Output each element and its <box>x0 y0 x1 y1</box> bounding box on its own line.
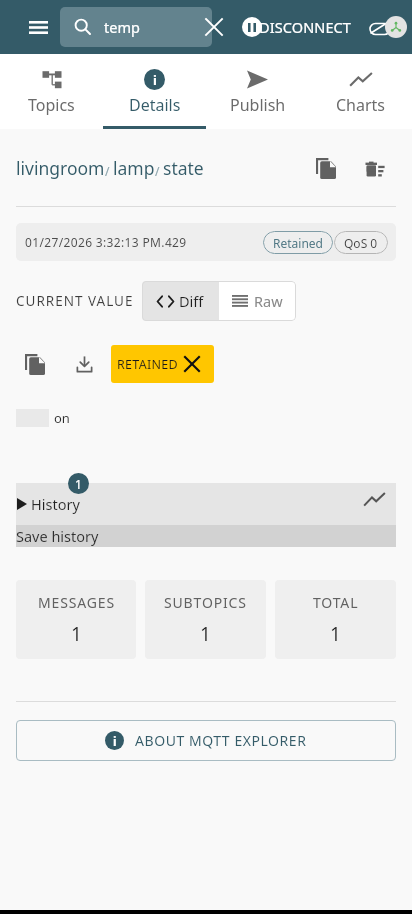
staticText: DISCONNECT <box>259 17 351 37</box>
staticText: RETAINED <box>117 356 179 373</box>
button[interactable]: Connection status <box>360 0 412 54</box>
button[interactable]: Download value <box>65 345 103 383</box>
button[interactable]: Copy topic <box>307 149 345 187</box>
staticText: 1 <box>71 621 82 647</box>
button[interactable]: Topics <box>0 54 103 129</box>
staticText: MESSAGES <box>38 593 115 612</box>
button[interactable]: Charts <box>309 54 412 129</box>
staticText: History <box>31 494 80 514</box>
button[interactable]: Menu <box>22 11 54 43</box>
staticText: 01/27/2026 3:32:13 PM.429 <box>25 234 187 250</box>
button[interactable]: History <box>16 483 396 525</box>
staticText: Save history <box>16 526 99 546</box>
staticText: CURRENT VALUE <box>16 292 134 310</box>
staticText: i <box>153 71 157 89</box>
button[interactable]: QoS 0 <box>334 231 388 254</box>
staticText: / <box>105 163 113 179</box>
staticText: Details <box>129 94 181 116</box>
button[interactable]: Save history <box>16 525 396 547</box>
button[interactable]: Delete topic <box>355 149 393 187</box>
staticText: Raw <box>254 291 283 311</box>
staticText: Publish <box>230 94 286 116</box>
button[interactable]: RETAINED <box>111 345 214 383</box>
staticText: Retained <box>273 235 323 251</box>
button[interactable]: Diff <box>142 281 219 321</box>
staticText: Diff <box>179 291 204 311</box>
button[interactable]: i <box>16 720 396 761</box>
button[interactable]: Copy value <box>16 345 54 383</box>
button[interactable]: temp <box>60 7 212 47</box>
button[interactable]: i <box>103 54 206 129</box>
staticText: 1 <box>75 476 82 492</box>
button[interactable]: DISCONNECT <box>242 6 354 48</box>
button[interactable]: TOTAL <box>275 580 396 659</box>
staticText: / <box>155 163 163 179</box>
button[interactable]: Raw <box>219 281 296 321</box>
staticText: TOTAL <box>313 593 359 612</box>
staticText: 1 <box>200 621 211 647</box>
button[interactable]: Show chart <box>358 483 390 515</box>
staticText: livingroom <box>16 156 105 180</box>
button[interactable]: MESSAGES <box>16 580 136 659</box>
button[interactable]: Clear search <box>198 11 230 43</box>
staticText: 1 <box>330 621 341 647</box>
button[interactable]: Retained <box>263 231 333 254</box>
staticText: QoS 0 <box>344 235 378 251</box>
button[interactable]: SUBTOPICS <box>145 580 266 659</box>
staticText: i <box>113 733 117 749</box>
staticText: Charts <box>336 94 386 116</box>
staticText: temp <box>104 17 140 37</box>
staticText: SUBTOPICS <box>164 593 247 612</box>
button[interactable]: Publish <box>206 54 309 129</box>
staticText: Topics <box>28 94 75 116</box>
staticText: ABOUT MQTT EXPLORER <box>135 731 307 750</box>
staticText: on <box>54 409 70 427</box>
staticText: state <box>163 156 204 180</box>
staticText: lamp <box>113 156 155 180</box>
